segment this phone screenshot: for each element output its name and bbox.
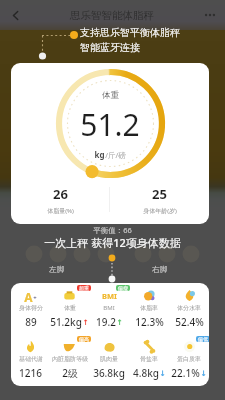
staticText: 平衡值：66 <box>93 225 132 235</box>
staticText: 偏低 <box>198 336 208 342</box>
staticText: 支持思乐智平衡体脂秤 <box>80 26 180 39</box>
staticText: 身体年龄(岁) <box>143 207 177 215</box>
button[interactable]: 骨盐率 <box>129 334 169 386</box>
staticText: 体脂率 <box>140 304 158 312</box>
staticText: /斤/磅 <box>105 150 126 160</box>
staticText: 超重 <box>79 285 89 291</box>
staticText: 骨盐率 <box>140 355 158 363</box>
staticText: ↓ <box>200 369 207 378</box>
button[interactable]: A <box>11 283 50 334</box>
button[interactable]: 偏低 <box>169 334 209 386</box>
staticText: 22.1% <box>171 366 200 380</box>
staticText: 51.2kg <box>50 315 82 329</box>
staticText: 体分水率 <box>177 304 201 312</box>
staticText: 2级 <box>62 366 78 380</box>
staticText: BMI <box>103 304 115 312</box>
button[interactable]: 25 <box>110 179 209 221</box>
staticText: 4.8kg <box>133 366 159 380</box>
button[interactable]: 超重 <box>50 283 89 334</box>
staticText: 一次上秤 获得12项身体数据 <box>44 235 181 250</box>
button[interactable]: 基础代谢 <box>11 334 50 386</box>
staticText: 体重 <box>102 90 119 101</box>
staticText: 左脚 <box>49 265 64 274</box>
staticText: ↑ <box>116 318 123 327</box>
staticText: 36.8kg <box>93 366 125 380</box>
staticText: + <box>33 294 37 302</box>
staticText: 偏瘦 <box>118 285 128 291</box>
button[interactable]: More options <box>195 0 225 30</box>
staticText: 思乐智智能体脂秤 <box>70 9 154 22</box>
button[interactable]: Back <box>0 0 30 30</box>
staticText: 26 <box>53 185 68 203</box>
staticText: 肌肉量 <box>100 355 118 363</box>
staticText: 1216 <box>19 366 42 380</box>
staticText: 12.3% <box>135 315 164 329</box>
button[interactable]: 体脂率 <box>129 283 169 334</box>
staticText: 右脚 <box>152 265 167 274</box>
button[interactable]: 26 <box>11 179 109 221</box>
staticText: 身体得分 <box>19 304 43 312</box>
staticText: 51.2 <box>80 104 140 145</box>
staticText: 智能蓝牙连接 <box>80 41 140 54</box>
button[interactable]: 偏高 <box>50 334 89 386</box>
staticText: 25 <box>152 185 167 203</box>
staticText: ↑ <box>82 318 89 327</box>
staticText: BMI <box>102 291 117 301</box>
staticText: 52.4% <box>175 315 204 329</box>
staticText: 偏高 <box>79 336 89 342</box>
staticText: 基础代谢 <box>19 355 43 363</box>
staticText: 89 <box>25 315 37 329</box>
staticText: 蛋白质率 <box>177 355 201 363</box>
staticText: 体脂量(%) <box>47 207 74 215</box>
staticText: 体重 <box>64 304 76 312</box>
staticText: A <box>24 289 33 302</box>
button[interactable]: 体分水率 <box>169 283 209 334</box>
button[interactable]: BMI <box>89 283 129 334</box>
staticText: ↓ <box>159 369 166 378</box>
staticText: 内脏脂肪等级 <box>52 355 88 363</box>
staticText: kg <box>94 149 105 160</box>
staticText: 19.2 <box>96 315 116 329</box>
button[interactable]: 肌肉量 <box>89 334 129 386</box>
